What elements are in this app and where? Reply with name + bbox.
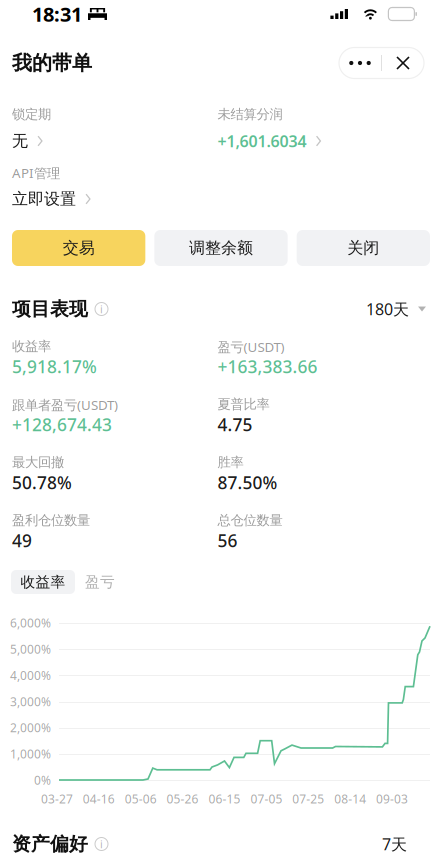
button[interactable]: 未结算分润	[217, 106, 423, 152]
staticText: 09-03	[376, 791, 408, 807]
staticText: 05-06	[125, 791, 157, 807]
staticText: 收益率	[12, 338, 51, 354]
staticText: 盈亏(USDT)	[217, 338, 284, 356]
button[interactable]: 调整余额	[154, 230, 288, 266]
staticText: 盈利仓位数量	[12, 512, 90, 528]
staticText: 交易	[63, 238, 95, 258]
staticText: 87.50%	[217, 471, 277, 494]
staticText: 50.78%	[12, 471, 72, 494]
button[interactable]: 盈亏	[81, 570, 119, 594]
button[interactable]: API管理	[12, 164, 220, 210]
staticText: 我的带单	[12, 51, 92, 75]
button[interactable]: More	[339, 47, 381, 78]
staticText: 最大回撤	[12, 454, 64, 470]
staticText: 4.75	[217, 413, 252, 436]
button[interactable]: 收益率	[11, 570, 75, 594]
staticText: 18:31	[32, 1, 82, 27]
staticText: 关闭	[347, 238, 379, 258]
staticText: 1,000%	[10, 746, 51, 762]
staticText: 夏普比率	[217, 396, 269, 412]
staticText: 08-14	[334, 791, 366, 807]
staticText: 56	[217, 529, 237, 552]
staticText: 0%	[34, 772, 51, 788]
button[interactable]: Close	[382, 47, 424, 78]
staticText: 未结算分润	[217, 106, 282, 122]
staticText: 07-05	[250, 791, 282, 807]
staticText: 2,000%	[10, 720, 51, 736]
staticText: 4,000%	[10, 667, 51, 683]
staticText: 07-25	[292, 791, 324, 807]
staticText: 3,000%	[10, 693, 51, 709]
staticText: 盈亏	[85, 573, 115, 591]
staticText: 资产偏好	[12, 832, 88, 855]
staticText: 胜率	[217, 454, 243, 470]
button[interactable]: 180天	[366, 298, 426, 320]
staticText: 跟单者盈亏(USDT)	[12, 396, 118, 414]
staticText: 无	[12, 131, 28, 151]
staticText: 调整余额	[189, 238, 253, 258]
button[interactable]: 关闭	[297, 230, 430, 266]
button[interactable]: 交易	[12, 230, 145, 266]
staticText: 05-26	[167, 791, 199, 807]
staticText: 06-15	[208, 791, 240, 807]
staticText: +1,601.6034	[217, 130, 306, 152]
staticText: 5,000%	[10, 641, 51, 657]
staticText: i	[100, 302, 103, 316]
staticText: +163,383.66	[217, 355, 317, 378]
staticText: 49	[12, 529, 32, 552]
staticText: 6,000%	[10, 615, 51, 631]
staticText: 180天	[366, 298, 409, 320]
staticText: i	[100, 837, 103, 851]
button[interactable]: 锁定期	[12, 106, 217, 152]
staticText: 7天	[382, 833, 407, 855]
staticText: 立即设置	[12, 189, 76, 209]
staticText: 5,918.17%	[12, 355, 97, 378]
staticText: 收益率	[20, 573, 65, 591]
staticText: +128,674.43	[12, 413, 112, 436]
staticText: 项目表现	[12, 297, 88, 320]
staticText: 总仓位数量	[217, 512, 282, 528]
staticText: API管理	[12, 164, 60, 182]
staticText: 锁定期	[12, 106, 51, 122]
staticText: 04-16	[83, 791, 115, 807]
staticText: 03-27	[41, 791, 73, 807]
